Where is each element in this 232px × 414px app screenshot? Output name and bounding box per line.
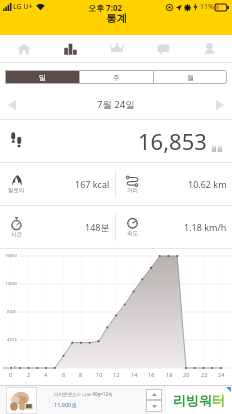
staticText: 12 [113,371,120,378]
staticText: 리빙워 [173,392,212,408]
button[interactable]: 다이몬앳소스 나트 40g×12개 [0,386,232,414]
button[interactable]: Previous ad [146,389,162,400]
button[interactable]: Chat [140,35,186,62]
button[interactable]: 주 [80,70,153,84]
staticText: LG U+ [13,2,33,12]
staticText: 8426 [7,309,17,315]
button[interactable]: 일 [5,70,79,84]
staticText: 0 [9,371,13,378]
button[interactable]: Previous day [0,90,24,119]
staticText: 1.18 km/h [184,221,227,233]
staticText: 10 [96,371,103,378]
staticText: 12640 [5,281,17,287]
staticText: 주 [113,73,120,82]
button[interactable]: 칼로리 [0,163,115,205]
staticText: 0 [14,365,17,371]
staticText: 10.62 km [188,178,227,190]
staticText: 다이몬앳소스 나트 40g×12개 [54,391,113,397]
button[interactable]: Ranking [94,35,140,62]
staticText: 오후 7:02 [88,2,123,13]
staticText: 16 [148,371,155,378]
staticText: 22 [201,371,208,378]
staticText: 월 [187,73,194,82]
button[interactable]: 속도 [116,206,232,248]
staticText: 속도 [127,230,138,237]
staticText: 4213 [7,337,17,343]
button[interactable]: Next day [208,90,232,119]
button[interactable]: 16,853 [0,120,232,162]
staticText: 8 [79,371,83,378]
staticText: 16,853 [138,126,207,156]
staticText: 18 [166,371,173,378]
staticText: 16853 [5,253,17,259]
staticText: 일 [39,73,46,82]
staticText: 거리 [127,187,138,194]
staticText: 걸음 [211,145,223,153]
button[interactable]: 월 [154,70,227,84]
staticText: 11,900원 [54,401,77,409]
button[interactable]: Statistics [47,35,94,62]
staticText: 4 [44,371,48,378]
staticText: 24 [218,371,225,378]
staticText: 14 [131,371,138,378]
staticText: 20 [183,371,190,378]
staticText: 7월 24일 [97,98,135,111]
button[interactable]: Profile [186,35,232,62]
button[interactable]: Home [0,35,47,62]
staticText: 6 [62,371,66,378]
button[interactable]: 시간 [0,206,115,248]
staticText: 시간 [11,231,22,238]
staticText: 2 [27,371,31,378]
button[interactable]: Next ad [146,400,162,412]
staticText: 167 kcal [75,178,110,190]
staticText: 통계 [106,12,127,25]
staticText: 11% [200,2,214,12]
staticText: 칼로리 [8,187,25,194]
staticText: 148분 [85,221,110,233]
button[interactable]: 거리 [116,163,232,205]
staticText: 터 [212,392,225,408]
